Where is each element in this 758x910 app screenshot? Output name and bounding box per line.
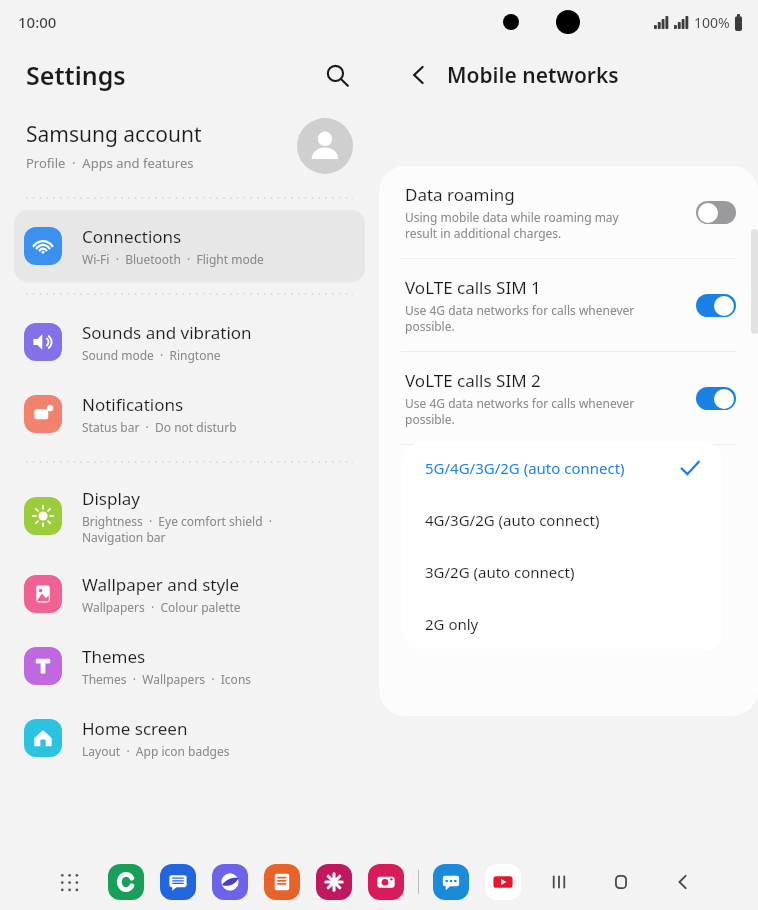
button[interactable]: Chat (433, 864, 469, 900)
staticText: Themes · Wallpapers · Icons (82, 671, 252, 687)
button[interactable]: 2G only (403, 598, 723, 650)
staticText: VoLTE calls SIM 1 (405, 276, 541, 299)
button[interactable]: Search (317, 55, 357, 95)
button[interactable]: Home (604, 865, 638, 899)
staticText: Themes (82, 645, 146, 668)
staticText: Notifications (82, 393, 184, 416)
staticText: Settings (26, 58, 317, 92)
staticText: 4G/3G/2G (auto connect) (425, 510, 701, 530)
staticText: VoLTE calls SIM 2 (405, 369, 541, 392)
staticText: Home screen (82, 717, 188, 740)
staticText: 10:00 (18, 12, 57, 32)
button[interactable]: Apps (52, 865, 86, 899)
staticText: 100% (694, 13, 730, 32)
button[interactable]: VoLTE calls SIM 2 (696, 387, 736, 410)
staticText: Data roaming (405, 183, 515, 206)
staticText: Display (82, 487, 140, 510)
staticText: Profile · Apps and features (26, 154, 194, 172)
button[interactable]: YouTube (485, 864, 521, 900)
staticText: Layout · App icon badges (82, 743, 230, 759)
button[interactable]: Themes (0, 630, 379, 702)
staticText: Status bar · Do not disturb (82, 419, 237, 435)
button[interactable]: Samsung account (0, 106, 379, 186)
button[interactable]: Wallpaper and style (0, 558, 379, 630)
button[interactable]: Messages (160, 864, 196, 900)
staticText: Sound mode · Ringtone (82, 347, 221, 363)
staticText: Use 4G data networks for calls whenever … (405, 395, 635, 428)
staticText: Use 4G data networks for calls whenever … (405, 302, 635, 335)
staticText: Wi-Fi · Bluetooth · Flight mode (82, 251, 264, 267)
staticText: Sounds and vibration (82, 321, 252, 344)
button[interactable]: Internet (212, 864, 248, 900)
button[interactable]: Data roaming (379, 166, 758, 258)
staticText: Connections (82, 225, 182, 248)
button[interactable]: 4G/3G/2G (auto connect) (403, 494, 723, 546)
button[interactable]: 5G/4G/3G/2G (auto connect) (403, 442, 723, 494)
button[interactable]: Gallery (316, 864, 352, 900)
button[interactable]: Sounds and vibration (0, 306, 379, 378)
staticText: Network operators (405, 555, 556, 578)
button[interactable]: VoLTE calls SIM 1 (379, 259, 758, 351)
staticText: 3G/2G (auto connect) (425, 562, 701, 582)
staticText: Using mobile data while roaming may resu… (405, 209, 619, 242)
button[interactable]: Connections (14, 210, 365, 282)
staticText: 2G only (425, 614, 701, 634)
button[interactable]: Home screen (0, 702, 379, 774)
button[interactable]: Network mode SIM 1 (379, 445, 758, 537)
button[interactable]: Back (399, 55, 439, 95)
button[interactable]: Back (666, 865, 700, 899)
button[interactable]: Camera (368, 864, 404, 900)
button[interactable]: VoLTE calls SIM 2 (379, 352, 758, 444)
button[interactable]: Notes (264, 864, 300, 900)
staticText: Mobile networks (447, 61, 619, 90)
button[interactable]: Network operators (379, 537, 758, 595)
staticText: Network mode SIM 1 (405, 470, 574, 493)
staticText: Brightness · Eye comfort shield · Naviga… (82, 513, 273, 546)
staticText: Samsung account (26, 120, 202, 149)
button[interactable]: Notifications (0, 378, 379, 450)
staticText: Wallpaper and style (82, 573, 240, 596)
button[interactable]: Display (0, 474, 379, 558)
button[interactable]: Recents (542, 865, 576, 899)
staticText: 5G/4G/3G/2G (auto connect) (425, 458, 679, 478)
staticText: Wallpapers · Colour palette (82, 599, 241, 615)
button[interactable]: Data roaming (696, 201, 736, 224)
button[interactable]: VoLTE calls SIM 1 (696, 294, 736, 317)
button[interactable]: 3G/2G (auto connect) (403, 546, 723, 598)
button[interactable]: Phone (108, 864, 144, 900)
